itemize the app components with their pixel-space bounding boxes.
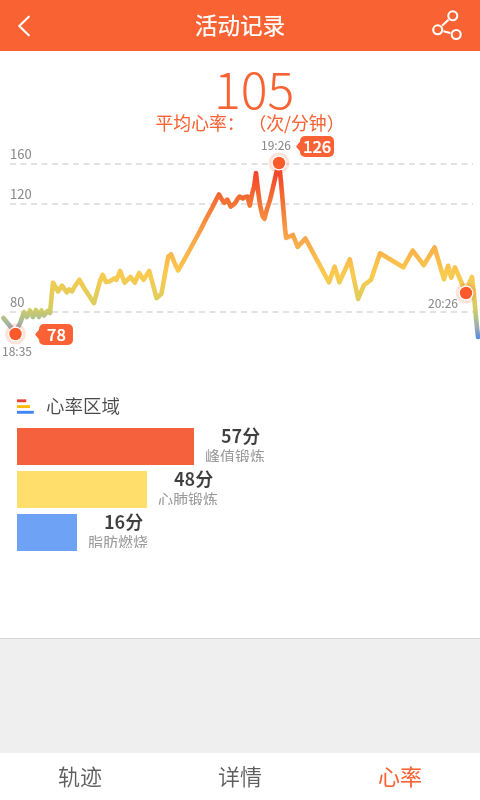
staticText: 78 [47, 325, 66, 345]
staticText: 160 [10, 146, 32, 162]
staticText: 轨迹 [58, 763, 103, 790]
staticText: 活动记录 [195, 12, 286, 39]
staticText: 48分 [174, 468, 214, 490]
staticText: 详情 [218, 763, 263, 790]
staticText: 心率 [378, 763, 423, 790]
staticText: 57分 [221, 425, 261, 447]
staticText: 80 [10, 294, 25, 310]
staticText: 心肺锻炼 [158, 490, 219, 505]
button[interactable]: Share [427, 4, 471, 48]
staticText: 平均心率： （次/分钟） [10, 113, 480, 135]
staticText: 16分 [104, 511, 144, 533]
staticText: 19:26 [261, 138, 291, 153]
staticText: 18:35 [2, 344, 32, 359]
staticText: 峰值锻炼 [205, 447, 266, 462]
button[interactable]: 轨迹 [0, 753, 160, 800]
staticText: 126 [303, 137, 332, 157]
staticText: 120 [10, 186, 32, 202]
button[interactable]: 心率 [320, 753, 480, 800]
staticText: 20:26 [428, 296, 458, 311]
staticText: 心率区域 [46, 395, 121, 418]
button[interactable]: Back [2, 4, 46, 48]
button[interactable]: 详情 [160, 753, 320, 800]
staticText: 脂肪燃烧 [88, 533, 149, 548]
staticText: 105 [14, 60, 480, 121]
